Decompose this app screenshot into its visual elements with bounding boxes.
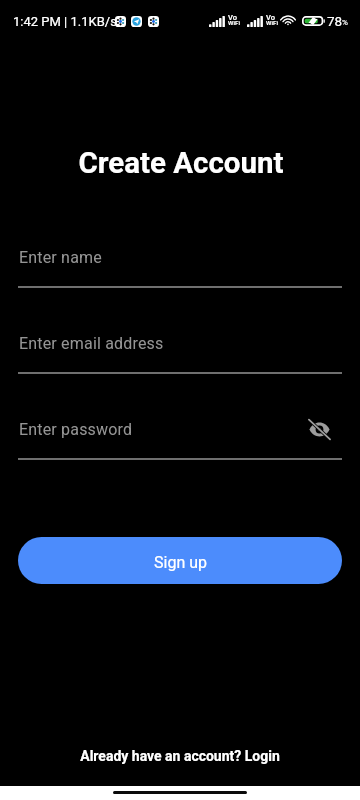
staticText: Sign up — [154, 553, 207, 572]
button[interactable]: Show password — [309, 420, 330, 439]
staticText: WiFi — [266, 19, 279, 26]
button[interactable]: Sign up — [18, 537, 342, 584]
staticText: Enter email address — [19, 334, 164, 353]
staticText: 78 — [327, 13, 343, 29]
staticText: % — [342, 18, 348, 27]
staticText: Already have an account? Login — [0, 748, 360, 764]
button[interactable]: Enter name — [18, 239, 342, 288]
button[interactable]: Enter password — [18, 411, 342, 460]
staticText: Enter name — [19, 248, 102, 267]
button[interactable]: Enter email address — [18, 325, 342, 374]
staticText: Vo — [228, 13, 237, 22]
button[interactable]: Already have an account? Login — [0, 748, 360, 764]
staticText: Enter password — [19, 420, 133, 439]
staticText: 1:42 PM | 1.1KB/s — [13, 14, 117, 29]
staticText: Vo — [266, 13, 275, 22]
staticText: Create Account — [1, 146, 360, 181]
staticText: WiFi — [228, 19, 241, 26]
